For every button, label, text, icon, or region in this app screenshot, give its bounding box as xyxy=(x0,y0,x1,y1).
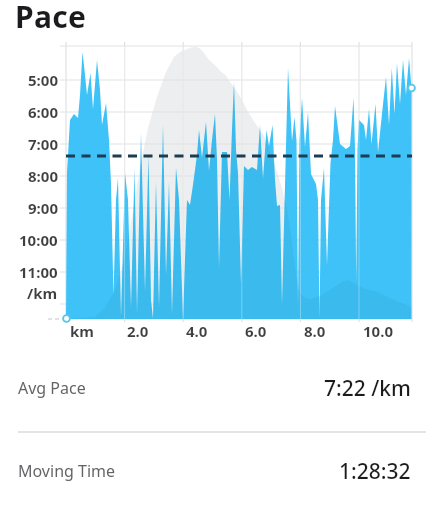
staticText: 8:00 xyxy=(28,166,58,184)
staticText: /km xyxy=(27,283,58,301)
button[interactable]: Moving Time xyxy=(0,448,426,494)
staticText: 5:00 xyxy=(28,70,58,88)
button[interactable]: Avg Pace xyxy=(0,365,426,411)
staticText: km xyxy=(70,321,94,341)
staticText: 4.0 xyxy=(186,321,208,341)
staticText: Pace xyxy=(15,0,87,37)
staticText: 2.0 xyxy=(127,321,149,341)
staticText: 6.0 xyxy=(245,321,267,341)
staticText: 8.0 xyxy=(304,321,326,341)
staticText: Avg Pace xyxy=(18,377,86,399)
staticText: 10.0 xyxy=(363,321,393,341)
staticText: 9:00 xyxy=(28,198,58,216)
staticText: 11:00 xyxy=(19,262,58,280)
staticText: 7:22 /km xyxy=(324,374,411,403)
staticText: Moving Time xyxy=(18,460,116,482)
staticText: 1:28:32 xyxy=(339,457,411,486)
staticText: 6:00 xyxy=(28,102,58,120)
staticText: 7:00 xyxy=(28,134,58,152)
staticText: 10:00 xyxy=(19,230,58,248)
